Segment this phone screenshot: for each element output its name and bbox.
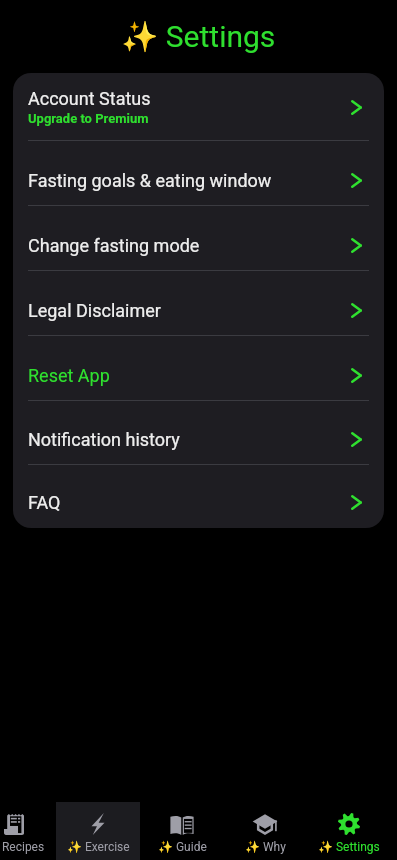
button[interactable]: Change fasting mode: [13, 206, 384, 271]
button[interactable]: FAQ: [13, 465, 384, 528]
button[interactable]: ✨ Settings: [307, 802, 391, 860]
button[interactable]: Reset App: [13, 336, 384, 401]
button[interactable]: ✨ Guide: [140, 802, 224, 860]
staticText: Notification history: [28, 429, 180, 450]
staticText: ✨ Exercise: [67, 840, 130, 854]
button[interactable]: ✨ Exercise: [56, 802, 140, 860]
staticText: ✨ Why: [245, 840, 286, 854]
button[interactable]: Fasting goals & eating window: [13, 141, 384, 206]
staticText: Fasting goals & eating window: [28, 170, 272, 191]
staticText: Change fasting mode: [28, 235, 200, 256]
staticText: ✨ Guide: [158, 840, 207, 854]
staticText: Legal Disclaimer: [28, 300, 161, 321]
staticText: Reset App: [28, 365, 110, 386]
staticText: FAQ: [28, 492, 61, 513]
staticText: Account Status: [28, 88, 151, 109]
staticText: ✨ Settings: [318, 840, 380, 854]
button[interactable]: Legal Disclaimer: [13, 271, 384, 336]
button[interactable]: ✨ Why: [223, 802, 307, 860]
button[interactable]: ✨ Recipes: [0, 802, 56, 860]
staticText: ✨ Recipes: [0, 840, 45, 854]
staticText: ✨ Settings: [121, 19, 276, 54]
button[interactable]: Account Status: [13, 73, 384, 141]
button[interactable]: Notification history: [13, 401, 384, 465]
staticText: Upgrade to Premium: [28, 111, 149, 126]
